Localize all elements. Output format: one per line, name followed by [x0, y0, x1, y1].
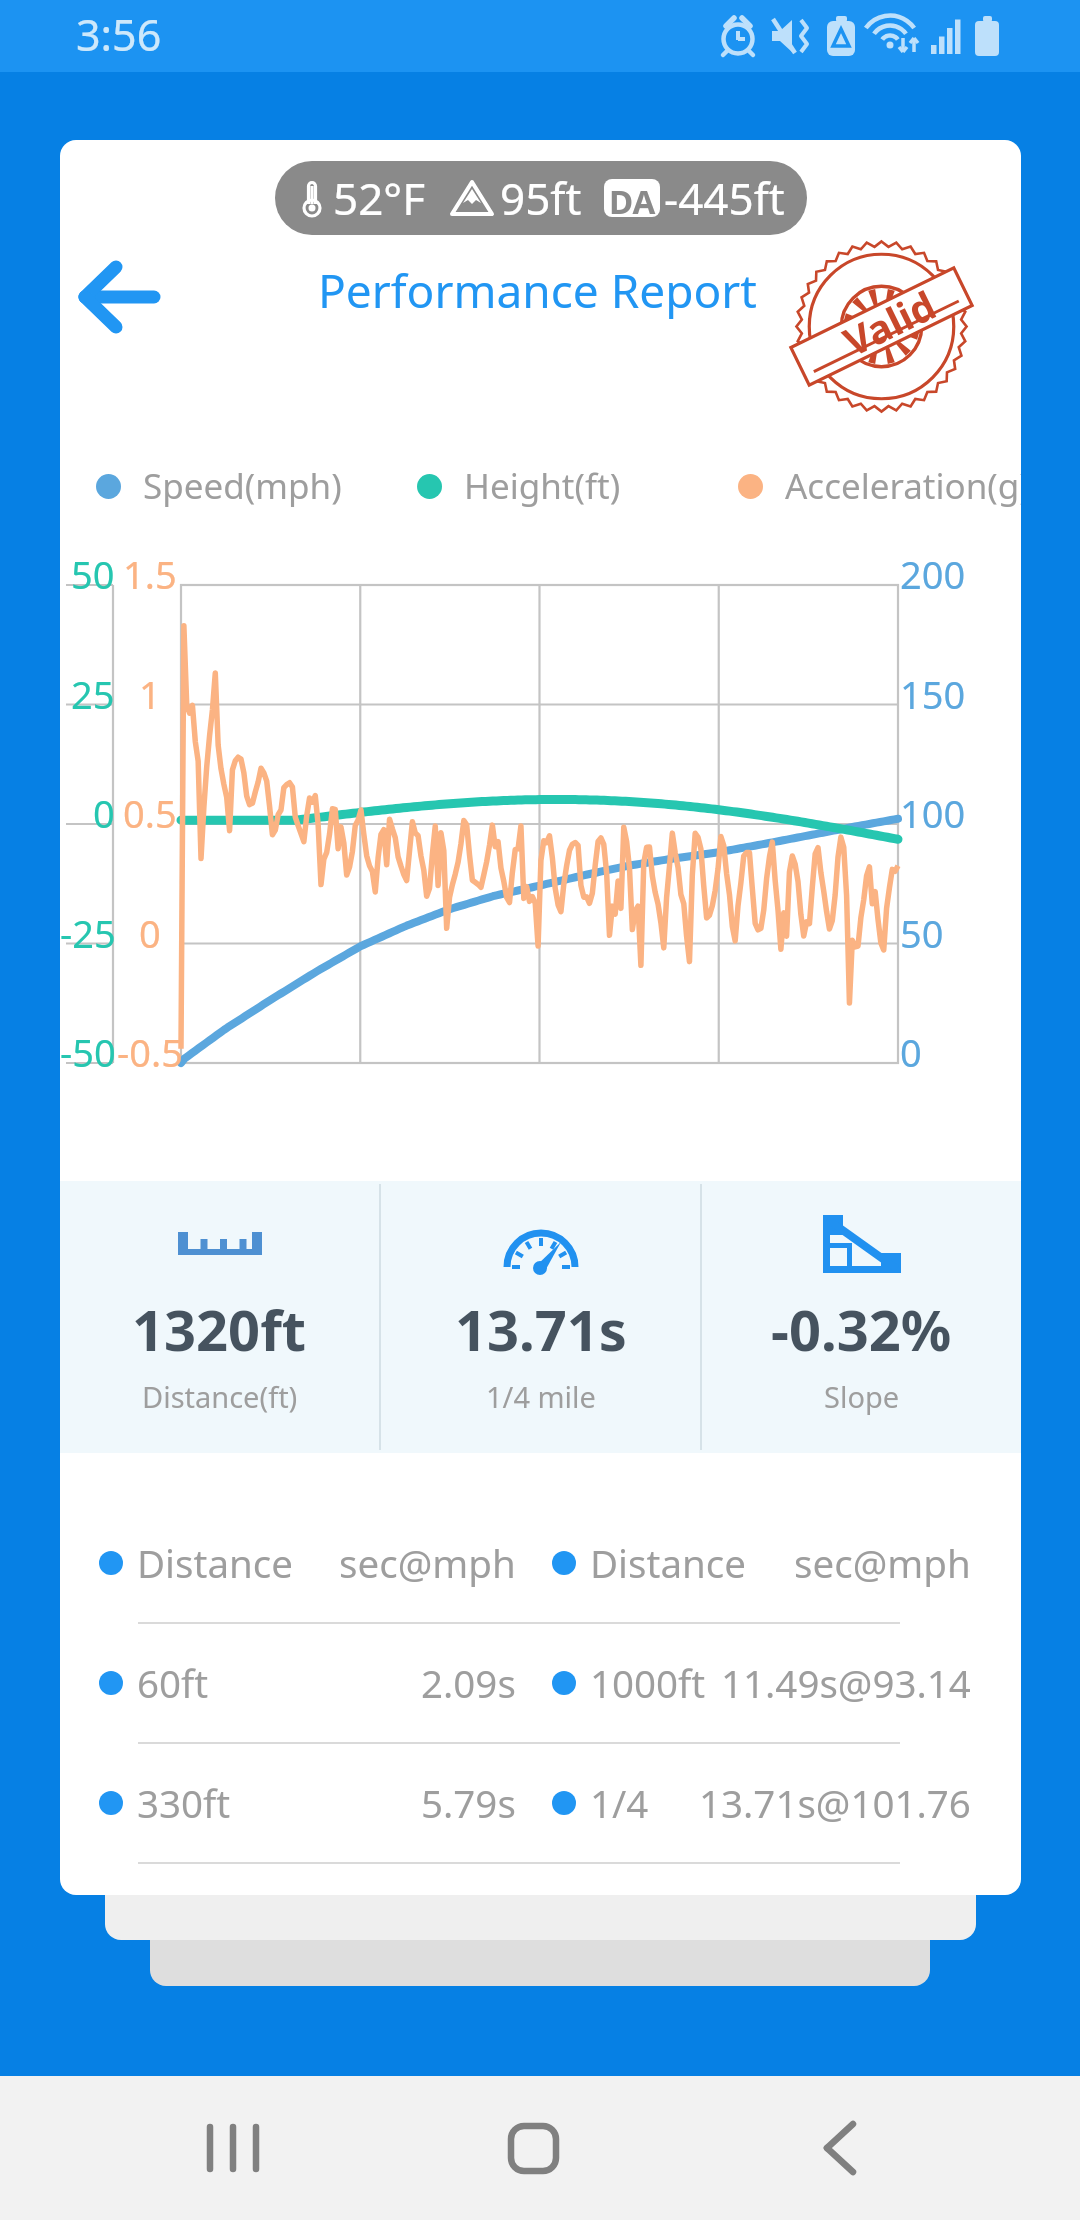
staticText: 60ft — [137, 1657, 209, 1709]
staticText: 2.09s — [421, 1657, 516, 1709]
button[interactable]: 60ft — [60, 1624, 1021, 1744]
staticText: 1000ft — [590, 1657, 706, 1709]
button[interactable]: 330ft — [60, 1744, 1021, 1864]
staticText: 95ft — [500, 168, 582, 228]
button[interactable]: Valid stamp — [796, 241, 967, 412]
staticText: Distance(ft) — [142, 1377, 298, 1416]
button[interactable]: Recent apps — [173, 2088, 293, 2208]
staticText: -0.32% — [771, 1291, 952, 1367]
staticText: Valid — [834, 278, 944, 367]
button[interactable]: Distance — [60, 1504, 1021, 1624]
staticText: Distance — [590, 1537, 746, 1589]
staticText: 1 — [139, 668, 161, 720]
staticText: 330ft — [137, 1777, 231, 1829]
button[interactable]: Home — [473, 2088, 593, 2208]
staticText: 1320ft — [132, 1291, 307, 1367]
button[interactable]: 13.71s — [381, 1181, 700, 1453]
staticText: 0.5 — [123, 787, 177, 839]
staticText: 52°F — [333, 168, 426, 228]
staticText: -0.5 — [117, 1026, 183, 1078]
staticText: -50 — [60, 1026, 115, 1078]
button[interactable]: 1320ft — [60, 1181, 379, 1453]
staticText: -445ft — [664, 168, 785, 228]
staticText: 150 — [900, 668, 966, 720]
staticText: 1/4 mile — [486, 1377, 596, 1416]
staticText: 13.71s@101.76 — [699, 1777, 971, 1829]
staticText: 13.71s — [455, 1291, 627, 1367]
staticText: 0 — [900, 1026, 922, 1078]
staticText: 50 — [71, 548, 115, 600]
staticText: 3:56 — [76, 5, 162, 64]
staticText: -25 — [60, 907, 115, 959]
staticText: Acceleration(g) — [785, 462, 1021, 510]
button[interactable]: Back — [777, 2088, 897, 2208]
staticText: sec@mph — [794, 1537, 971, 1589]
staticText: Slope — [824, 1377, 900, 1416]
staticText: 11.49s@93.14 — [721, 1657, 971, 1709]
staticText: Performance Report — [318, 259, 757, 322]
button[interactable]: -0.32% — [702, 1181, 1021, 1453]
staticText: 1.5 — [123, 548, 177, 600]
button[interactable]: Back — [60, 247, 180, 347]
staticText: 100 — [900, 787, 966, 839]
staticText: 25 — [71, 668, 115, 720]
staticText: Speed(mph) — [143, 462, 342, 510]
staticText: DA — [609, 179, 656, 217]
staticText: 0 — [139, 907, 161, 959]
staticText: 50 — [900, 907, 944, 959]
staticText: 5.79s — [421, 1777, 516, 1829]
staticText: 200 — [900, 548, 966, 600]
button[interactable]: 52°F — [275, 161, 807, 235]
staticText: 1/4 — [590, 1777, 649, 1829]
staticText: sec@mph — [339, 1537, 516, 1589]
staticText: Height(ft) — [464, 462, 621, 510]
staticText: 0 — [93, 787, 115, 839]
staticText: Distance — [137, 1537, 293, 1589]
